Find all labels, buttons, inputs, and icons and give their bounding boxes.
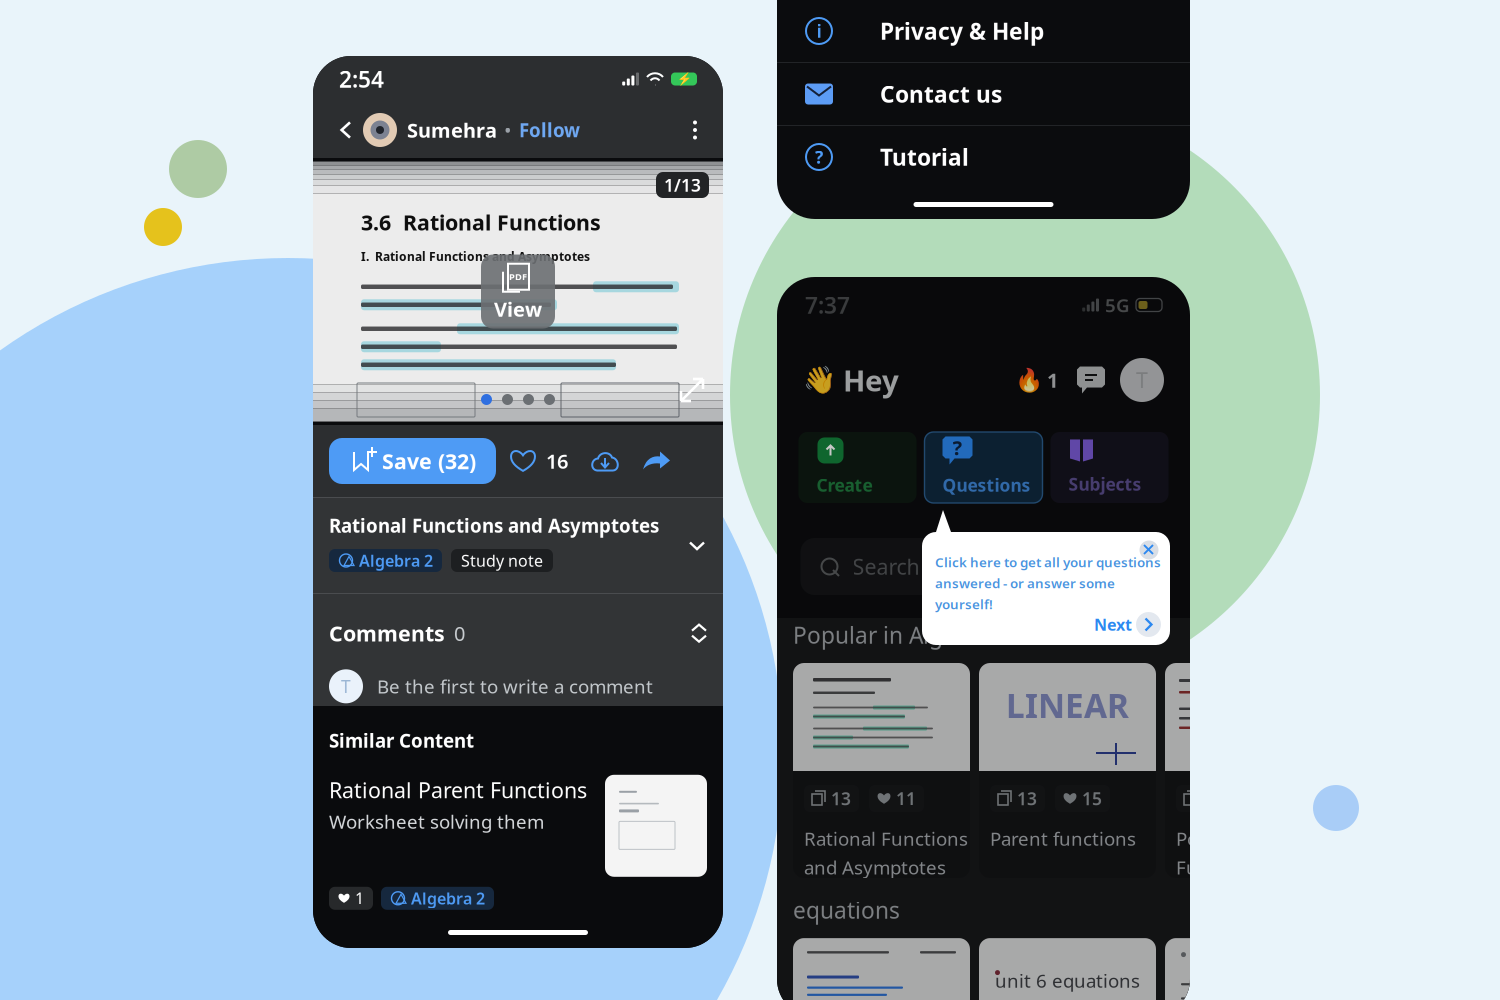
staticText: Next — [1094, 614, 1132, 635]
staticText: Rational Parent Functions — [329, 776, 587, 804]
button[interactable]: Messages — [1076, 365, 1106, 395]
staticText: 5G — [1105, 293, 1130, 317]
button[interactable]: Like — [500, 438, 546, 484]
staticText: equations — [793, 895, 900, 925]
button[interactable]: LINEAR — [979, 663, 1156, 878]
button[interactable]: 13 — [793, 663, 970, 878]
staticText: 👋 — [803, 365, 836, 395]
staticText: Popular in Algebra 2 — [793, 620, 1011, 650]
staticText: Rational Functions and Asymptotes — [329, 513, 659, 538]
staticText: unit 6 equations — [995, 968, 1140, 993]
staticText: I. Rational Functions and Asymptotes — [361, 248, 590, 264]
button[interactable]: Rational Functions and Asymptotes — [313, 498, 723, 593]
staticText: Contact us — [880, 79, 1002, 109]
staticText: and Asymptotes — [804, 855, 946, 880]
staticText: 11 — [896, 787, 916, 810]
staticText: Similar Content — [329, 728, 474, 753]
button[interactable]: Create — [798, 432, 916, 503]
staticText: Fu — [1176, 855, 1198, 880]
staticText: View — [494, 296, 542, 322]
button[interactable]: 🔥 — [1015, 367, 1058, 393]
staticText: 0 — [454, 620, 465, 646]
staticText: Rational Functions — [804, 826, 968, 851]
staticText: Po — [1176, 826, 1198, 851]
staticText: Subjects — [1068, 472, 1141, 495]
button[interactable]: Save (32) — [329, 438, 496, 484]
staticText: 1/13 — [664, 173, 701, 196]
staticText: ⚡ — [676, 72, 691, 86]
staticText: LINEAR — [1006, 683, 1129, 727]
staticText: Hey — [843, 360, 899, 399]
staticText: Click here to get all your questions — [935, 553, 1161, 571]
staticText: i — [816, 19, 821, 42]
staticText: Tutorial — [880, 142, 969, 172]
button[interactable]: Download — [582, 438, 628, 484]
button[interactable]: ? — [924, 432, 1042, 503]
staticText: 3.6 Rational Functions — [361, 208, 601, 236]
button[interactable]: View PDF — [481, 254, 555, 328]
button[interactable]: Back — [329, 113, 363, 147]
staticText: ? — [815, 145, 823, 168]
button[interactable]: Close tip — [1138, 539, 1160, 561]
staticText: Parent functions — [990, 826, 1136, 851]
staticText: 7:37 — [805, 290, 850, 320]
staticText: Study note — [461, 550, 543, 571]
staticText: Be the first to write a comment — [377, 674, 653, 699]
button[interactable]: Follow — [519, 118, 580, 142]
staticText: Privacy & Help — [880, 16, 1044, 46]
staticText: Algebra 2 — [411, 888, 485, 909]
staticText: T — [341, 675, 351, 698]
staticText: 🔥 — [1015, 367, 1043, 393]
staticText: 2:54 — [339, 64, 384, 94]
staticText: 13 — [1017, 787, 1037, 810]
staticText: 15 — [1082, 787, 1102, 810]
button[interactable]: Profile — [1120, 358, 1164, 402]
staticText: yourself! — [935, 595, 993, 613]
button[interactable]: i — [777, 0, 1190, 62]
staticText: Worksheet solving them — [329, 809, 544, 834]
button[interactable]: Search topics, notes... — [800, 538, 1166, 595]
staticText: Search topics, notes... — [852, 552, 1071, 581]
staticText: Create — [816, 473, 872, 496]
button[interactable]: Share — [634, 438, 680, 484]
staticText: ? — [952, 434, 962, 461]
button[interactable]: Subjects — [1050, 432, 1168, 503]
staticText: Sumehra — [407, 117, 497, 143]
staticText: Follow — [519, 118, 580, 142]
button[interactable]: 9 — [1165, 663, 1342, 878]
staticText: T — [1136, 366, 1148, 394]
button[interactable]: More options — [683, 118, 707, 142]
button[interactable]: Next — [1094, 612, 1161, 637]
staticText: Algebra 2 — [359, 550, 433, 571]
staticText: Questions — [942, 473, 1030, 496]
staticText: 16 — [546, 448, 568, 474]
staticText: answered - or answer some — [935, 574, 1115, 592]
button[interactable]: Full screen — [679, 377, 705, 403]
staticText: 1 — [1047, 367, 1058, 393]
staticText: 1 — [355, 888, 364, 909]
button[interactable]: ? — [777, 126, 1190, 188]
staticText: 13 — [831, 787, 851, 810]
staticText: Comments — [329, 619, 445, 647]
staticText: PDF — [509, 270, 527, 283]
button[interactable]: Contact us — [777, 63, 1190, 125]
staticText: Save (32) — [382, 447, 476, 475]
staticText: • — [504, 117, 512, 143]
